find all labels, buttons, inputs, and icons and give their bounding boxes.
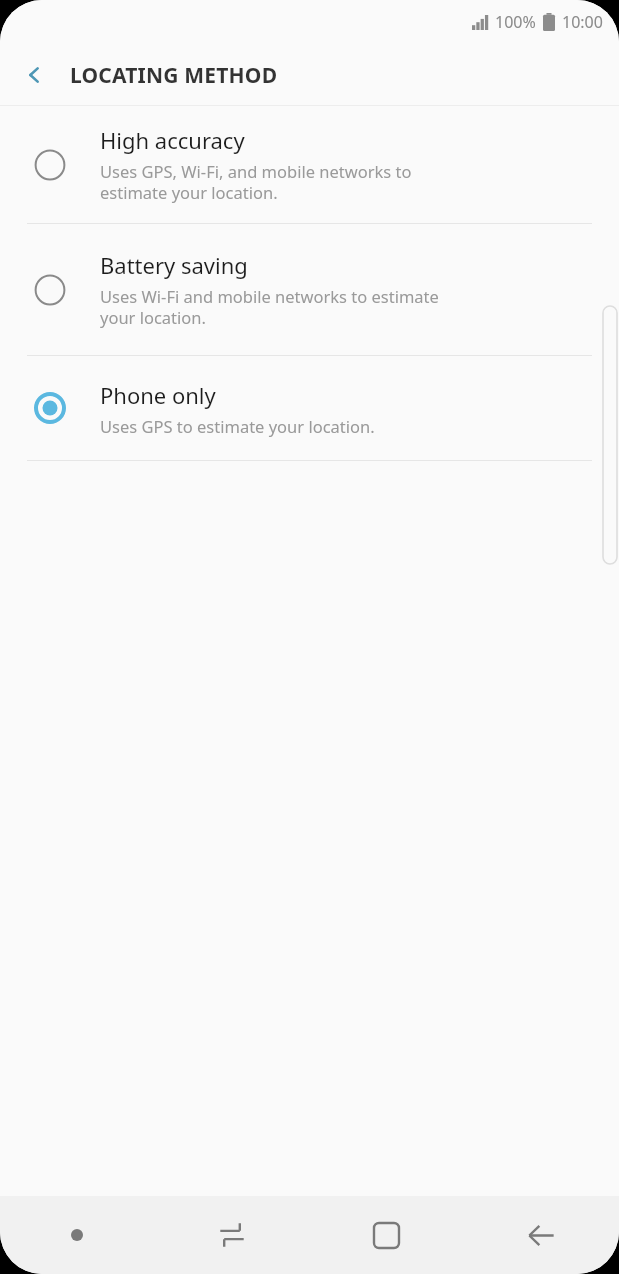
- button[interactable]: High accuracy: [0, 106, 619, 223]
- button[interactable]: Back: [0, 44, 70, 106]
- staticText: 10:00: [562, 11, 603, 33]
- button[interactable]: Menu: [0, 1196, 154, 1274]
- button[interactable]: Recent apps: [154, 1196, 309, 1274]
- button[interactable]: Home: [309, 1196, 464, 1274]
- staticText: Uses GPS, Wi-Fi, and mobile networks to …: [100, 160, 412, 204]
- staticText: High accuracy: [100, 125, 245, 155]
- staticText: Battery saving: [100, 250, 248, 280]
- button[interactable]: Back: [464, 1196, 619, 1274]
- staticText: Uses Wi-Fi and mobile networks to estima…: [100, 285, 439, 329]
- staticText: Uses GPS to estimate your location.: [100, 415, 375, 437]
- staticText: 100%: [495, 11, 536, 33]
- staticText: Phone only: [100, 380, 216, 410]
- staticText: LOCATING METHOD: [70, 61, 278, 90]
- button[interactable]: Battery saving: [0, 224, 619, 355]
- button[interactable]: Phone only: [0, 356, 619, 460]
